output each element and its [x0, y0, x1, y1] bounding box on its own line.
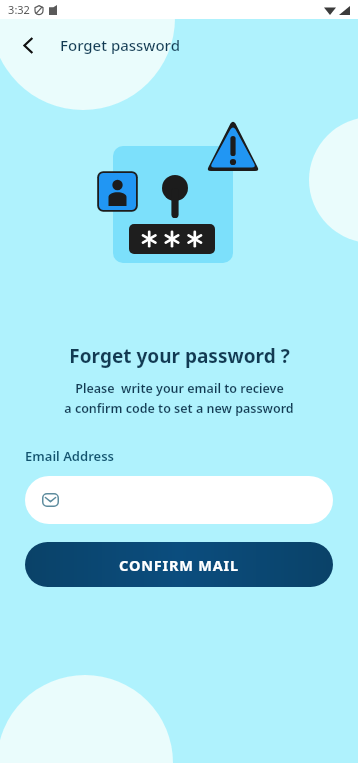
staticText: a confirm code to set a new password: [64, 400, 294, 417]
button[interactable]: [25, 476, 333, 524]
button[interactable]: CONFIRM MAIL: [25, 542, 333, 587]
staticText: CONFIRM MAIL: [119, 555, 239, 575]
button[interactable]: Back: [8, 25, 48, 65]
staticText: Forget password: [60, 35, 180, 55]
staticText: 3:32: [8, 2, 30, 17]
staticText: Forget your password ?: [69, 343, 290, 369]
staticText: Email Address: [25, 447, 114, 465]
staticText: Please write your email to recieve: [75, 380, 284, 397]
